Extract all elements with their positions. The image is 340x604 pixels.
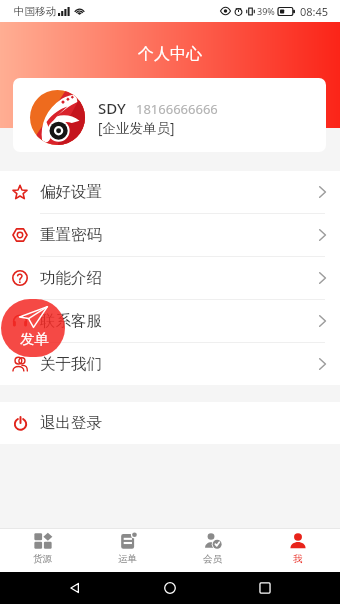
button[interactable]: 关于我们 <box>0 343 340 385</box>
button[interactable]: Recents <box>245 572 285 604</box>
staticText: [企业发单员] <box>98 119 175 137</box>
button[interactable]: 功能介绍 <box>0 257 340 299</box>
button[interactable]: 我 <box>255 529 340 572</box>
staticText: 关于我们 <box>40 354 102 374</box>
staticText: 中国移动 <box>14 5 56 18</box>
staticText: 联系客服 <box>40 311 102 331</box>
button[interactable]: 运单 <box>85 529 170 572</box>
button[interactable]: 退出登录 <box>0 402 340 444</box>
button[interactable]: 发单 <box>1 299 65 357</box>
staticText: 功能介绍 <box>40 268 102 288</box>
button[interactable]: 偏好设置 <box>0 171 340 213</box>
button[interactable]: 货源 <box>0 529 85 572</box>
staticText: 08:45 <box>300 4 329 19</box>
staticText: 重置密码 <box>40 225 102 245</box>
staticText: 个人中心 <box>138 44 202 64</box>
button[interactable]: 重置密码 <box>0 214 340 256</box>
staticText: 退出登录 <box>40 413 102 433</box>
button[interactable]: SDY <box>13 78 326 152</box>
staticText: 发单 <box>20 330 49 348</box>
staticText: 货源 <box>33 553 52 565</box>
staticText: 18166666666 <box>136 100 218 118</box>
button[interactable]: Home <box>150 572 190 604</box>
button[interactable]: 联系客服 <box>0 300 340 342</box>
staticText: 偏好设置 <box>40 182 102 202</box>
staticText: 我 <box>293 553 303 565</box>
staticText: 会员 <box>203 553 222 565</box>
button[interactable]: 会员 <box>170 529 255 572</box>
staticText: 运单 <box>118 553 137 565</box>
staticText: 39% <box>257 5 275 17</box>
staticText: SDY <box>98 98 126 118</box>
button[interactable]: Back <box>55 572 95 604</box>
